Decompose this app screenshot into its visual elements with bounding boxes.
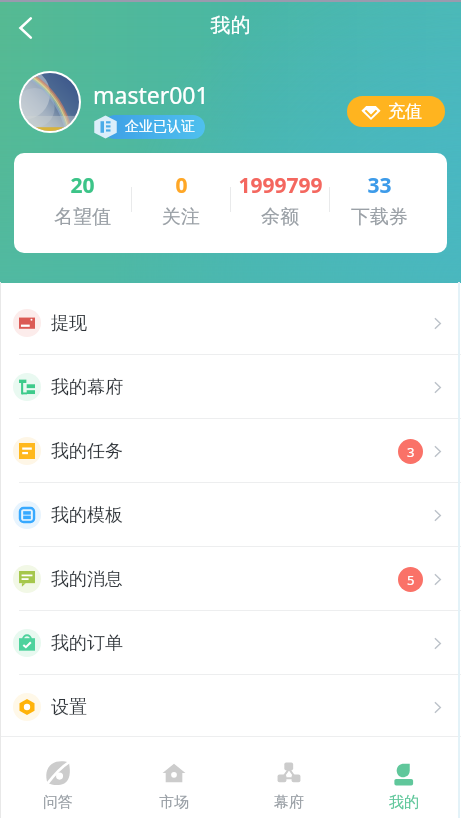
- staticText: 企业已认证: [125, 118, 195, 136]
- staticText: 幕府: [274, 793, 304, 812]
- staticText: 我的消息: [51, 568, 123, 591]
- staticText: 我的: [389, 793, 419, 812]
- button[interactable]: 幕府: [231, 737, 346, 818]
- staticText: 充值: [388, 101, 422, 122]
- button[interactable]: 提现: [0, 291, 461, 355]
- staticText: 我的幕府: [51, 376, 123, 399]
- staticText: 33: [367, 171, 392, 200]
- staticText: 下载券: [351, 205, 408, 229]
- button[interactable]: Avatar: [21, 73, 79, 131]
- button[interactable]: 充值: [347, 96, 445, 127]
- button[interactable]: 问答: [0, 737, 116, 818]
- staticText: 0: [175, 171, 188, 200]
- staticText: 名望值: [54, 205, 111, 229]
- button[interactable]: 我的订单: [0, 611, 461, 675]
- staticText: 关注: [162, 205, 200, 229]
- staticText: 设置: [51, 696, 87, 719]
- button[interactable]: Back: [4, 6, 48, 50]
- button[interactable]: 1999799: [231, 153, 329, 246]
- button[interactable]: 我的模板: [0, 483, 461, 547]
- staticText: 5: [407, 571, 415, 589]
- staticText: master001: [93, 79, 209, 110]
- staticText: 我的模板: [51, 504, 123, 527]
- staticText: 20: [70, 171, 95, 200]
- button[interactable]: 20: [33, 153, 131, 246]
- staticText: 我的任务: [51, 440, 123, 463]
- staticText: 1999799: [238, 171, 323, 200]
- staticText: 3: [407, 443, 415, 461]
- button[interactable]: 33: [330, 153, 428, 246]
- button[interactable]: 设置: [0, 675, 461, 739]
- button[interactable]: 企业已认证: [93, 115, 195, 139]
- button[interactable]: 市场: [116, 737, 231, 818]
- staticText: 我的: [0, 13, 461, 38]
- staticText: 提现: [51, 312, 87, 335]
- staticText: 问答: [43, 793, 73, 812]
- button[interactable]: 0: [132, 153, 230, 246]
- button[interactable]: 我的: [346, 737, 461, 818]
- staticText: 我的订单: [51, 632, 123, 655]
- button[interactable]: 我的消息: [0, 547, 461, 611]
- button[interactable]: 我的幕府: [0, 355, 461, 419]
- staticText: 市场: [159, 793, 189, 812]
- staticText: 余额: [261, 205, 299, 229]
- button[interactable]: 我的任务: [0, 419, 461, 483]
